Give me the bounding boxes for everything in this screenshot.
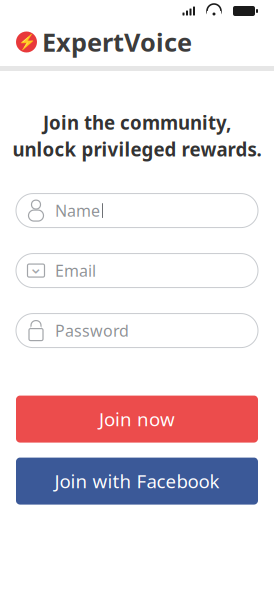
button[interactable]: Password bbox=[16, 314, 258, 348]
staticText: Password bbox=[55, 320, 129, 341]
staticText: unlock privileged rewards. bbox=[12, 137, 261, 162]
staticText: Join the community, bbox=[43, 110, 231, 135]
staticText: ⚡ bbox=[17, 34, 35, 50]
staticText: Name bbox=[55, 200, 100, 221]
button[interactable]: Join with Facebook bbox=[16, 458, 258, 505]
button[interactable]: ⌄ bbox=[16, 254, 258, 288]
staticText: ExpertVoice bbox=[42, 25, 192, 59]
staticText: Join now bbox=[99, 407, 175, 431]
staticText: Email bbox=[55, 260, 96, 281]
button[interactable]: Join now bbox=[16, 396, 258, 443]
button[interactable]: Name bbox=[16, 194, 258, 228]
staticText: ⌄ bbox=[28, 258, 43, 277]
staticText: Join with Facebook bbox=[54, 469, 219, 493]
